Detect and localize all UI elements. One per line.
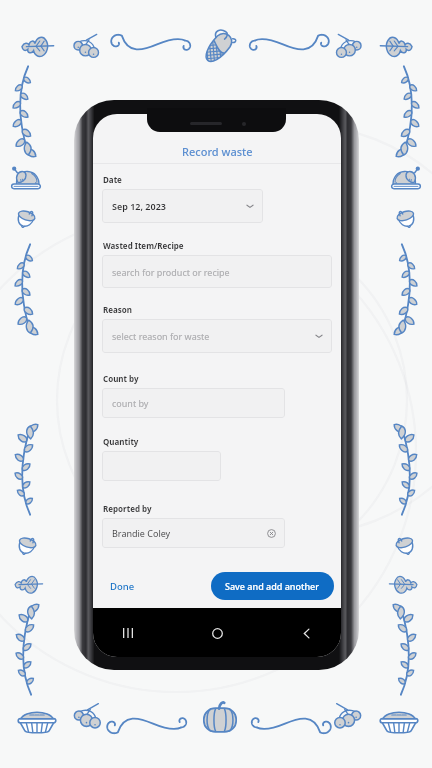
staticText: search for product or recipe (112, 266, 230, 278)
button[interactable]: Save and add another (211, 572, 334, 600)
button[interactable]: Back (293, 620, 319, 646)
staticText: Reason (103, 304, 133, 315)
staticText: Brandie Coley (112, 527, 171, 539)
button[interactable]: Recent apps (115, 620, 141, 646)
staticText: count by (112, 397, 149, 409)
staticText: Quantity (103, 436, 139, 447)
button[interactable]: search for product or recipe (102, 255, 332, 288)
button[interactable]: Sep 12, 2023 (102, 189, 263, 223)
staticText: Record waste (182, 144, 253, 159)
staticText: Done (110, 580, 135, 593)
button[interactable]: Brandie Coley (102, 518, 285, 548)
button[interactable]: Home (204, 620, 230, 646)
button[interactable]: count by (102, 388, 285, 418)
staticText: select reason for waste (112, 330, 210, 342)
button[interactable] (102, 451, 221, 481)
staticText: Date (103, 174, 122, 185)
staticText: Wasted Item/Recipe (103, 240, 184, 251)
staticText: Sep 12, 2023 (112, 200, 166, 212)
button[interactable]: Done (106, 576, 139, 597)
staticText: Count by (103, 373, 139, 384)
button[interactable]: select reason for waste (102, 319, 332, 353)
staticText: Reported by (103, 503, 152, 514)
staticText: Save and add another (225, 580, 320, 592)
